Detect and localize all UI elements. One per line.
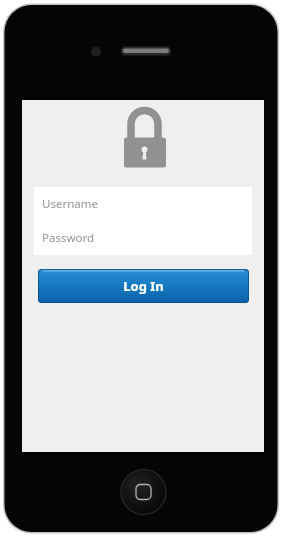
staticText: Password (42, 230, 95, 246)
staticText: Username (42, 196, 98, 212)
button[interactable]: Log In (38, 269, 249, 303)
button[interactable]: Username (34, 187, 252, 221)
button[interactable]: Password (34, 221, 252, 255)
staticText: Log In (123, 277, 164, 295)
button[interactable]: Home (121, 470, 166, 515)
